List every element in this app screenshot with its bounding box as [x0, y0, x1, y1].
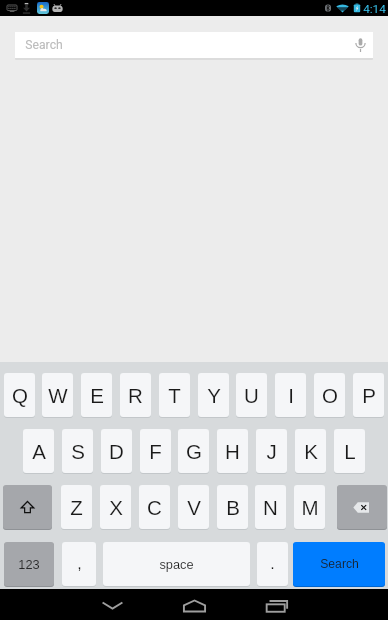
button[interactable]: W	[42, 373, 73, 417]
staticText: W	[48, 384, 68, 407]
staticText: I	[288, 384, 294, 407]
staticText: .	[270, 555, 275, 573]
button[interactable]: L	[334, 429, 365, 473]
staticText: ,	[77, 555, 82, 573]
button[interactable]: R	[120, 373, 151, 417]
button[interactable]: Q	[4, 373, 35, 417]
button[interactable]: V	[178, 485, 209, 529]
staticText: 123	[18, 557, 40, 571]
button[interactable]: E	[81, 373, 112, 417]
button[interactable]: P	[353, 373, 384, 417]
staticText: P	[362, 384, 376, 407]
staticText: B	[226, 496, 240, 519]
staticText: V	[187, 496, 201, 519]
button[interactable]: back	[337, 485, 387, 529]
button[interactable]: Search	[293, 542, 385, 586]
button[interactable]: Search	[15, 32, 373, 58]
button[interactable]: Y	[198, 373, 229, 417]
staticText: D	[109, 440, 124, 463]
staticText: O	[322, 384, 338, 407]
button[interactable]: G	[178, 429, 209, 473]
staticText: E	[90, 384, 104, 407]
staticText: J	[266, 440, 277, 463]
button[interactable]: T	[159, 373, 190, 417]
staticText: K	[304, 440, 318, 463]
staticText: N	[263, 496, 278, 519]
button[interactable]: space	[103, 542, 250, 586]
button[interactable]: Voice search	[351, 36, 369, 54]
button[interactable]: M	[294, 485, 325, 529]
button[interactable]: 123	[4, 542, 54, 586]
button[interactable]: shift	[3, 485, 52, 529]
staticText: Q	[12, 384, 28, 407]
staticText: A	[32, 440, 46, 463]
staticText: C	[147, 496, 162, 519]
staticText: G	[186, 440, 202, 463]
staticText: Y	[207, 384, 221, 407]
button[interactable]: A	[23, 429, 54, 473]
staticText: Search	[25, 38, 63, 52]
button[interactable]: K	[295, 429, 326, 473]
staticText: H	[225, 440, 240, 463]
button[interactable]: Hide keyboard	[92, 589, 132, 620]
button[interactable]: Z	[61, 485, 92, 529]
staticText: T	[168, 384, 181, 407]
button[interactable]: U	[236, 373, 267, 417]
button[interactable]: N	[255, 485, 286, 529]
staticText: L	[344, 440, 356, 463]
staticText: Search	[320, 557, 359, 571]
staticText: F	[149, 440, 162, 463]
staticText: U	[244, 384, 259, 407]
staticText: S	[71, 440, 85, 463]
staticText: M	[301, 496, 319, 519]
button[interactable]: .	[257, 542, 288, 586]
button[interactable]: C	[139, 485, 170, 529]
staticText: space	[159, 557, 194, 571]
staticText: X	[109, 496, 123, 519]
button[interactable]: O	[314, 373, 345, 417]
button[interactable]: D	[101, 429, 132, 473]
staticText: R	[128, 384, 143, 407]
staticText: 4:14	[363, 2, 386, 16]
button[interactable]: I	[275, 373, 306, 417]
button[interactable]: X	[100, 485, 131, 529]
staticText: Z	[70, 496, 83, 519]
button[interactable]: Recent apps	[257, 589, 297, 620]
button[interactable]: B	[217, 485, 248, 529]
button[interactable]: S	[62, 429, 93, 473]
button[interactable]: ,	[62, 542, 96, 586]
button[interactable]: Home	[174, 589, 214, 620]
button[interactable]: J	[256, 429, 287, 473]
button[interactable]: F	[140, 429, 171, 473]
button[interactable]: H	[217, 429, 248, 473]
